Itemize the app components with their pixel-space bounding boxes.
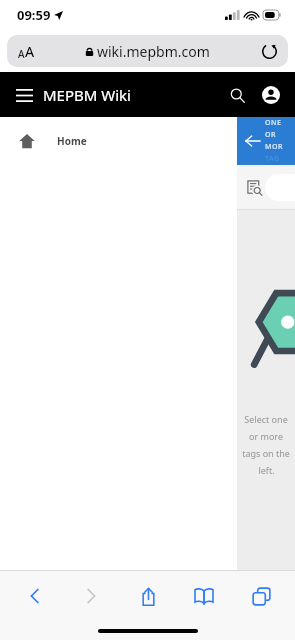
staticText: A — [25, 42, 35, 61]
staticText: wiki.mepbm.com — [97, 42, 210, 61]
staticText: left. — [258, 464, 275, 476]
staticText: Home — [57, 134, 87, 148]
button[interactable]: Back — [13, 581, 57, 611]
other: Text size options — [18, 42, 35, 61]
button[interactable]: Tabs — [239, 581, 283, 611]
button[interactable]: Bookmarks — [182, 581, 226, 611]
staticText: OR — [265, 130, 277, 140]
staticText: tags on the — [242, 447, 290, 459]
button[interactable]: Text size options — [7, 35, 288, 67]
staticText: 09:59 — [17, 6, 51, 24]
button[interactable]: Search — [224, 82, 250, 108]
button[interactable]: Home — [15, 129, 39, 153]
button[interactable]: Account — [258, 82, 284, 108]
staticText: ONE — [265, 118, 282, 128]
staticText: or more — [249, 430, 283, 442]
button[interactable]: Forward — [69, 581, 113, 611]
staticText: MEPBM Wiki — [43, 85, 131, 105]
staticText: A — [18, 47, 25, 61]
staticText: TAG — [265, 154, 280, 164]
button[interactable]: Back — [243, 131, 263, 151]
button[interactable]: Share — [126, 581, 170, 611]
staticText: Select one — [244, 413, 288, 425]
button[interactable]: Reload — [261, 43, 278, 60]
button[interactable]: Search tags — [245, 178, 263, 196]
button[interactable]: Home — [57, 134, 87, 148]
staticText: MOR — [265, 142, 284, 152]
button[interactable]: Menu — [11, 82, 37, 108]
